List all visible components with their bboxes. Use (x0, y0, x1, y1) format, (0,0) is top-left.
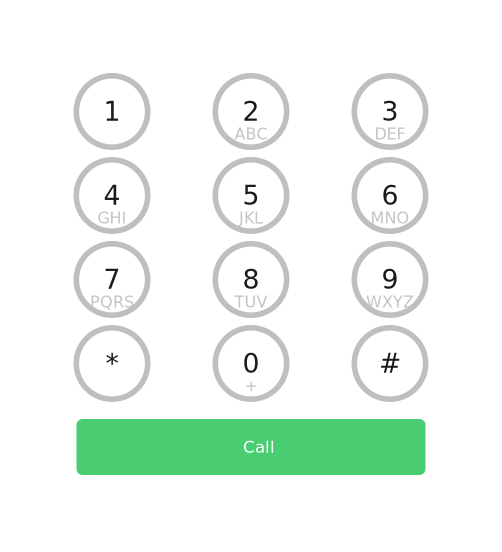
staticText: 5 (242, 180, 259, 211)
staticText: PQRS (90, 293, 134, 311)
staticText: 6 (381, 180, 398, 211)
staticText: ABC (234, 125, 267, 143)
staticText: # (379, 348, 401, 379)
staticText: * (105, 348, 118, 379)
staticText: DEF (374, 125, 405, 143)
staticText: 4 (103, 180, 120, 211)
button[interactable]: 7 (73, 241, 150, 318)
staticText: MNO (370, 209, 409, 227)
button[interactable]: 0 (212, 325, 289, 402)
staticText: 9 (381, 264, 398, 295)
button[interactable]: 1 (73, 73, 150, 150)
button[interactable]: 9 (351, 241, 428, 318)
button[interactable]: 6 (351, 157, 428, 234)
staticText: TUV (234, 293, 267, 311)
button[interactable]: * (73, 325, 150, 402)
staticText: 8 (242, 264, 259, 295)
button[interactable]: # (351, 325, 428, 402)
staticText: WXYZ (366, 293, 414, 311)
button[interactable]: 8 (212, 241, 289, 318)
button[interactable]: 2 (212, 73, 289, 150)
staticText: 7 (103, 264, 120, 295)
staticText: + (244, 377, 257, 395)
staticText: GHI (97, 209, 126, 227)
staticText: 2 (242, 96, 259, 127)
button[interactable]: 5 (212, 157, 289, 234)
button[interactable]: 3 (351, 73, 428, 150)
button[interactable]: Call (76, 419, 425, 475)
staticText: Call (243, 437, 275, 457)
staticText: JKL (239, 209, 263, 227)
staticText: 3 (381, 96, 398, 127)
staticText: 1 (103, 96, 120, 127)
button[interactable]: 4 (73, 157, 150, 234)
staticText: 0 (242, 348, 259, 379)
